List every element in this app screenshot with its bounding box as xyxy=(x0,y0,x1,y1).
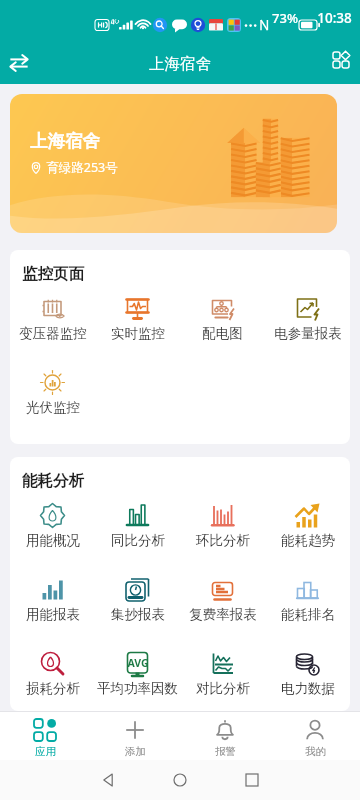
staticText: 监控页面 xyxy=(22,264,84,284)
staticText: 用能报表 xyxy=(26,606,80,623)
staticText: 实时监控 xyxy=(111,325,165,342)
staticText: 变压器监控 xyxy=(19,325,87,342)
button[interactable]: 能耗趋势 xyxy=(265,503,350,577)
button[interactable]: 添加 xyxy=(90,712,180,760)
staticText: 上海宿舍 xyxy=(149,54,211,74)
button[interactable]: 电力数据 xyxy=(265,651,350,711)
button[interactable]: 上海宿舍 xyxy=(10,94,337,233)
staticText: 应用 xyxy=(35,745,56,758)
button[interactable]: 集抄报表 xyxy=(95,577,180,651)
staticText: 能耗分析 xyxy=(22,471,84,491)
button[interactable]: 实时监控 xyxy=(95,296,180,370)
staticText: 上海宿舍 xyxy=(30,130,100,152)
staticText: 电参量报表 xyxy=(274,325,342,342)
button[interactable]: 用能报表 xyxy=(10,577,95,651)
button[interactable]: 光伏监控 xyxy=(10,370,95,444)
staticText: AVG xyxy=(127,656,149,670)
staticText: 对比分析 xyxy=(196,680,250,697)
button[interactable]: AVG xyxy=(95,651,180,711)
staticText: 配电图 xyxy=(202,325,243,342)
staticText: 我的 xyxy=(305,745,326,758)
button[interactable]: 应用 xyxy=(0,712,90,760)
staticText: 报警 xyxy=(215,745,236,758)
staticText: 环比分析 xyxy=(196,532,250,549)
button[interactable]: 对比分析 xyxy=(180,651,265,711)
staticText: 复费率报表 xyxy=(189,606,257,623)
button[interactable]: 切换站点 xyxy=(1,42,37,78)
staticText: 用能概况 xyxy=(26,532,80,549)
button[interactable]: 环比分析 xyxy=(180,503,265,577)
staticText: 光伏监控 xyxy=(26,399,80,416)
button[interactable]: 复费率报表 xyxy=(180,577,265,651)
button[interactable]: 电参量报表 xyxy=(265,296,350,370)
staticText: 10:38 xyxy=(317,9,352,27)
button[interactable]: 同比分析 xyxy=(95,503,180,577)
button[interactable]: 我的 xyxy=(270,712,360,760)
button[interactable]: 更多应用 xyxy=(322,41,360,79)
staticText: 电力数据 xyxy=(281,680,335,697)
button[interactable]: 能耗排名 xyxy=(265,577,350,651)
staticText: 平均功率因数 xyxy=(97,680,178,697)
button[interactable]: 配电图 xyxy=(180,296,265,370)
staticText: 73% xyxy=(272,9,298,27)
staticText: 损耗分析 xyxy=(26,680,80,697)
staticText: 能耗排名 xyxy=(281,606,335,623)
staticText: 同比分析 xyxy=(111,532,165,549)
staticText: 育绿路253号 xyxy=(46,159,118,176)
button[interactable]: 变压器监控 xyxy=(10,296,95,370)
staticText: 能耗趋势 xyxy=(281,532,335,549)
staticText: 集抄报表 xyxy=(111,606,165,623)
button[interactable]: 损耗分析 xyxy=(10,651,95,711)
button[interactable]: 用能概况 xyxy=(10,503,95,577)
staticText: 添加 xyxy=(125,745,146,758)
button[interactable]: 报警 xyxy=(180,712,270,760)
